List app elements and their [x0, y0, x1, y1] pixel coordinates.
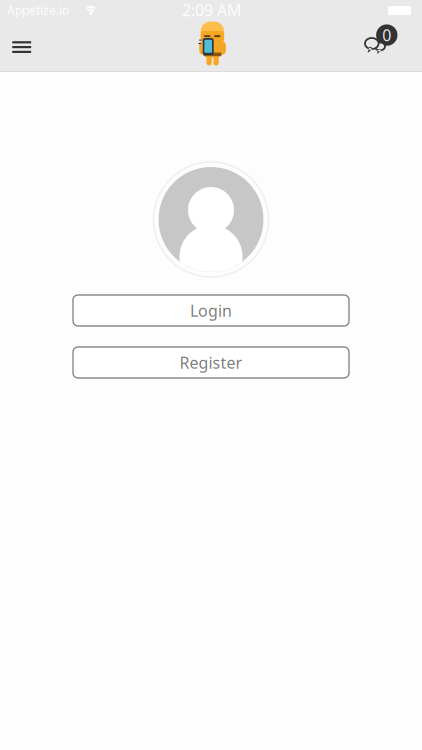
- staticText: 2:09 AM: [182, 0, 242, 21]
- staticText: Register: [179, 352, 242, 373]
- button[interactable]: Messages: [360, 20, 404, 56]
- staticText: Login: [190, 300, 232, 321]
- button[interactable]: Menu: [2, 25, 42, 69]
- staticText: Appetize.io: [7, 2, 69, 18]
- button[interactable]: Login: [73, 295, 349, 326]
- staticText: 0: [382, 24, 391, 46]
- button[interactable]: Register: [73, 347, 349, 378]
